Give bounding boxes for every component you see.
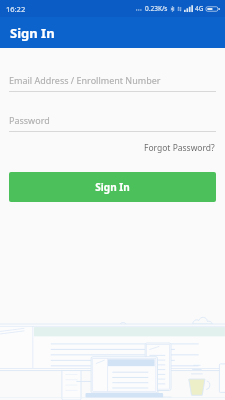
button[interactable]: Password [9,112,216,132]
staticText: Password [9,114,50,126]
staticText: 16:22 [6,4,26,14]
button[interactable]: Forgot Password? [9,139,216,157]
staticText: Forgot Password? [144,142,215,154]
button[interactable]: Email Address / Enrollment Number [9,72,216,92]
staticText: 4G [195,4,204,13]
staticText: Email Address / Enrollment Number [9,74,161,86]
staticText: Sign In [10,24,55,42]
staticText: Sign In [95,180,130,194]
staticText: 0.23K/s [145,4,168,13]
button[interactable]: Sign In [9,172,216,202]
